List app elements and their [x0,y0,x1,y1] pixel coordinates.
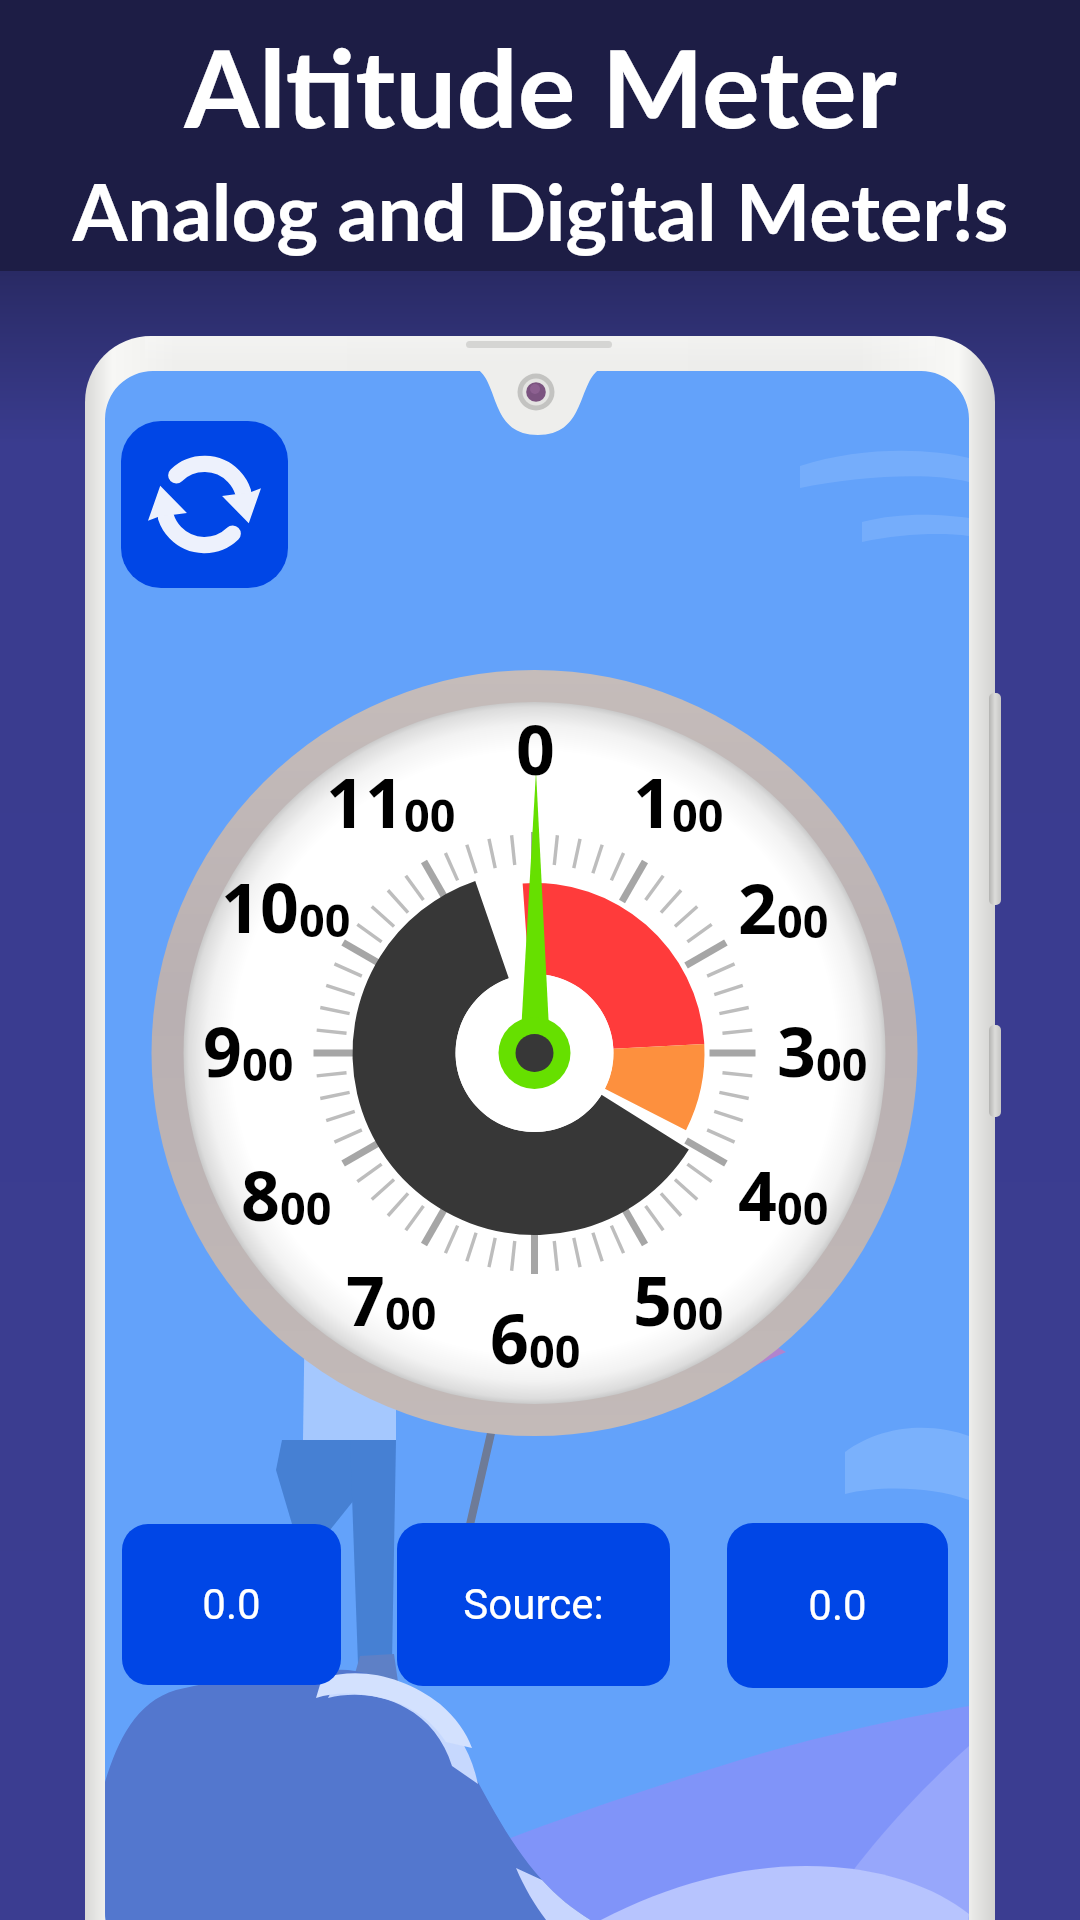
staticText: 00 [672,784,724,845]
staticText: 00 [280,1177,332,1238]
staticText: 3 [777,1004,816,1094]
staticText: 00 [385,1282,437,1343]
staticText: 11 [326,755,404,845]
staticText: 0.0 [808,1581,867,1630]
staticText: 2 [738,861,777,951]
staticText: 00 [816,1033,868,1094]
button[interactable]: Source: [397,1523,670,1686]
staticText: 0 [516,702,555,792]
staticText: 6 [490,1291,529,1381]
staticText: 00 [777,1177,829,1238]
staticText: 00 [299,889,351,950]
staticText: 0.0 [202,1580,261,1629]
staticText: 4 [738,1148,777,1238]
staticText: 00 [242,1033,294,1094]
staticText: 8 [241,1148,280,1238]
staticText: Altitude Meter [184,21,897,151]
staticText: 00 [529,1320,581,1381]
staticText: 7 [346,1253,385,1343]
button[interactable]: 0.0 [122,1524,341,1685]
button[interactable]: 0.0 [727,1523,948,1688]
staticText: Source: [463,1580,604,1629]
staticText: 00 [777,890,829,951]
staticText: 00 [404,784,456,845]
staticText: 9 [203,1004,242,1094]
button[interactable]: Refresh [121,421,288,588]
staticText: 1 [633,755,672,845]
staticText: 5 [633,1253,672,1343]
staticText: 00 [672,1282,724,1343]
staticText: Analog and Digital Meter!s [72,163,1009,258]
staticText: 10 [221,860,299,950]
